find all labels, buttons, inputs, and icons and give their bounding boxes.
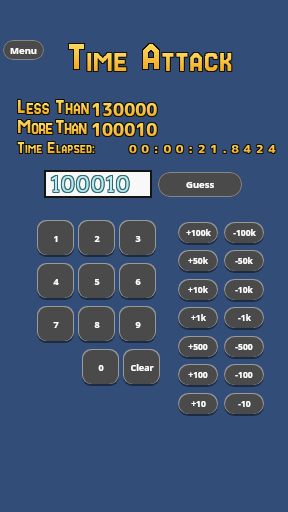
staticText: L	[17, 95, 26, 116]
staticText: T	[54, 97, 64, 118]
staticText: E	[48, 138, 57, 155]
staticText: Clear	[130, 361, 154, 373]
staticText: HAN	[63, 121, 86, 137]
staticText: LAPSED:	[55, 142, 94, 155]
staticText: HAN	[66, 101, 91, 117]
button[interactable]: -100k	[224, 222, 264, 243]
staticText: IME	[26, 142, 44, 155]
staticText: T	[56, 115, 65, 136]
button[interactable]: -10k	[224, 279, 264, 300]
staticText: ESS	[26, 102, 50, 118]
button[interactable]: 5	[78, 263, 115, 298]
staticText: IME	[24, 143, 42, 156]
staticText: -100k	[233, 227, 256, 239]
button[interactable]: 3	[119, 220, 156, 255]
staticText: LAPSED:	[55, 144, 94, 157]
staticText: T	[68, 35, 87, 76]
staticText: E	[46, 140, 55, 157]
button[interactable]: +10k	[178, 279, 218, 300]
staticText: -500	[235, 341, 253, 353]
staticText: TTACK	[161, 47, 233, 77]
button[interactable]: +10	[178, 393, 218, 414]
staticText: IME	[85, 47, 127, 77]
staticText: E	[47, 139, 56, 156]
staticText: ESS	[25, 102, 49, 118]
staticText: 100010	[52, 171, 132, 195]
staticText: 100010	[92, 118, 159, 142]
staticText: T	[18, 139, 26, 156]
staticText: ESS	[25, 100, 49, 116]
staticText: IME	[87, 47, 129, 77]
staticText: T	[56, 116, 65, 137]
button[interactable]: +100	[178, 364, 218, 385]
staticText: IME	[85, 46, 127, 76]
staticText: 100010	[91, 118, 158, 142]
staticText: HAN	[65, 101, 90, 117]
staticText: IME	[26, 143, 44, 156]
staticText: 130000	[90, 99, 157, 123]
button[interactable]: -100	[224, 364, 264, 385]
staticText: E	[46, 139, 55, 156]
staticText: 00:00:21.8424	[129, 140, 281, 157]
button[interactable]: Guess	[158, 172, 242, 197]
button[interactable]: -1k	[224, 307, 264, 328]
staticText: TTACK	[160, 48, 232, 78]
button[interactable]: 8	[78, 306, 115, 341]
staticText: L	[17, 96, 26, 117]
staticText: IME	[26, 144, 44, 157]
staticText: 100010	[91, 117, 158, 141]
button[interactable]: -500	[224, 336, 264, 357]
button[interactable]: 7	[37, 306, 74, 341]
staticText: ORE	[32, 120, 54, 136]
button[interactable]: Clear	[123, 349, 160, 384]
button[interactable]: +1k	[178, 307, 218, 328]
staticText: LAPSED:	[56, 144, 95, 157]
staticText: 100010	[92, 119, 159, 143]
staticText: HAN	[64, 101, 89, 117]
staticText: M	[17, 117, 31, 138]
button[interactable]: -50k	[224, 250, 264, 271]
staticText: T	[54, 115, 63, 136]
staticText: TTACK	[160, 46, 232, 76]
button[interactable]: +50k	[178, 250, 218, 271]
staticText: HAN	[64, 122, 87, 138]
button[interactable]: 1	[37, 220, 74, 255]
staticText: T	[18, 140, 26, 157]
staticText: A	[140, 36, 160, 77]
staticText: ESS	[27, 100, 51, 116]
staticText: 00:00:21.8424	[130, 139, 282, 156]
staticText: HAN	[65, 102, 90, 118]
staticText: 1	[53, 232, 59, 244]
staticText: L	[18, 96, 27, 117]
staticText: T	[55, 115, 64, 136]
staticText: A	[140, 37, 160, 78]
staticText: HAN	[65, 100, 90, 116]
staticText: TTACK	[162, 47, 234, 77]
button[interactable]: 9	[119, 306, 156, 341]
staticText: 00:00:21.8424	[129, 141, 281, 158]
staticText: A	[142, 37, 162, 78]
staticText: LAPSED:	[57, 144, 96, 157]
staticText: T	[55, 117, 64, 138]
staticText: 130000	[91, 97, 158, 121]
staticText: HAN	[64, 121, 87, 137]
button[interactable]: 4	[37, 263, 74, 298]
button[interactable]: +500	[178, 336, 218, 357]
staticText: A	[141, 36, 161, 77]
staticText: IME	[25, 144, 43, 157]
staticText: T	[17, 138, 25, 155]
staticText: 00:00:21.8424	[128, 139, 280, 156]
button[interactable]: +100k	[178, 222, 218, 243]
button[interactable]: 6	[119, 263, 156, 298]
staticText: HAN	[63, 122, 86, 138]
staticText: Menu	[10, 44, 37, 57]
staticText: T	[16, 140, 24, 157]
staticText: TTACK	[161, 48, 233, 78]
button[interactable]: -10	[224, 393, 264, 414]
staticText: T	[66, 36, 85, 77]
button[interactable]: 2	[78, 220, 115, 255]
button[interactable]: 0	[82, 349, 119, 384]
button[interactable]: Menu	[3, 40, 44, 60]
staticText: E	[48, 140, 57, 157]
staticText: ORE	[32, 122, 54, 138]
